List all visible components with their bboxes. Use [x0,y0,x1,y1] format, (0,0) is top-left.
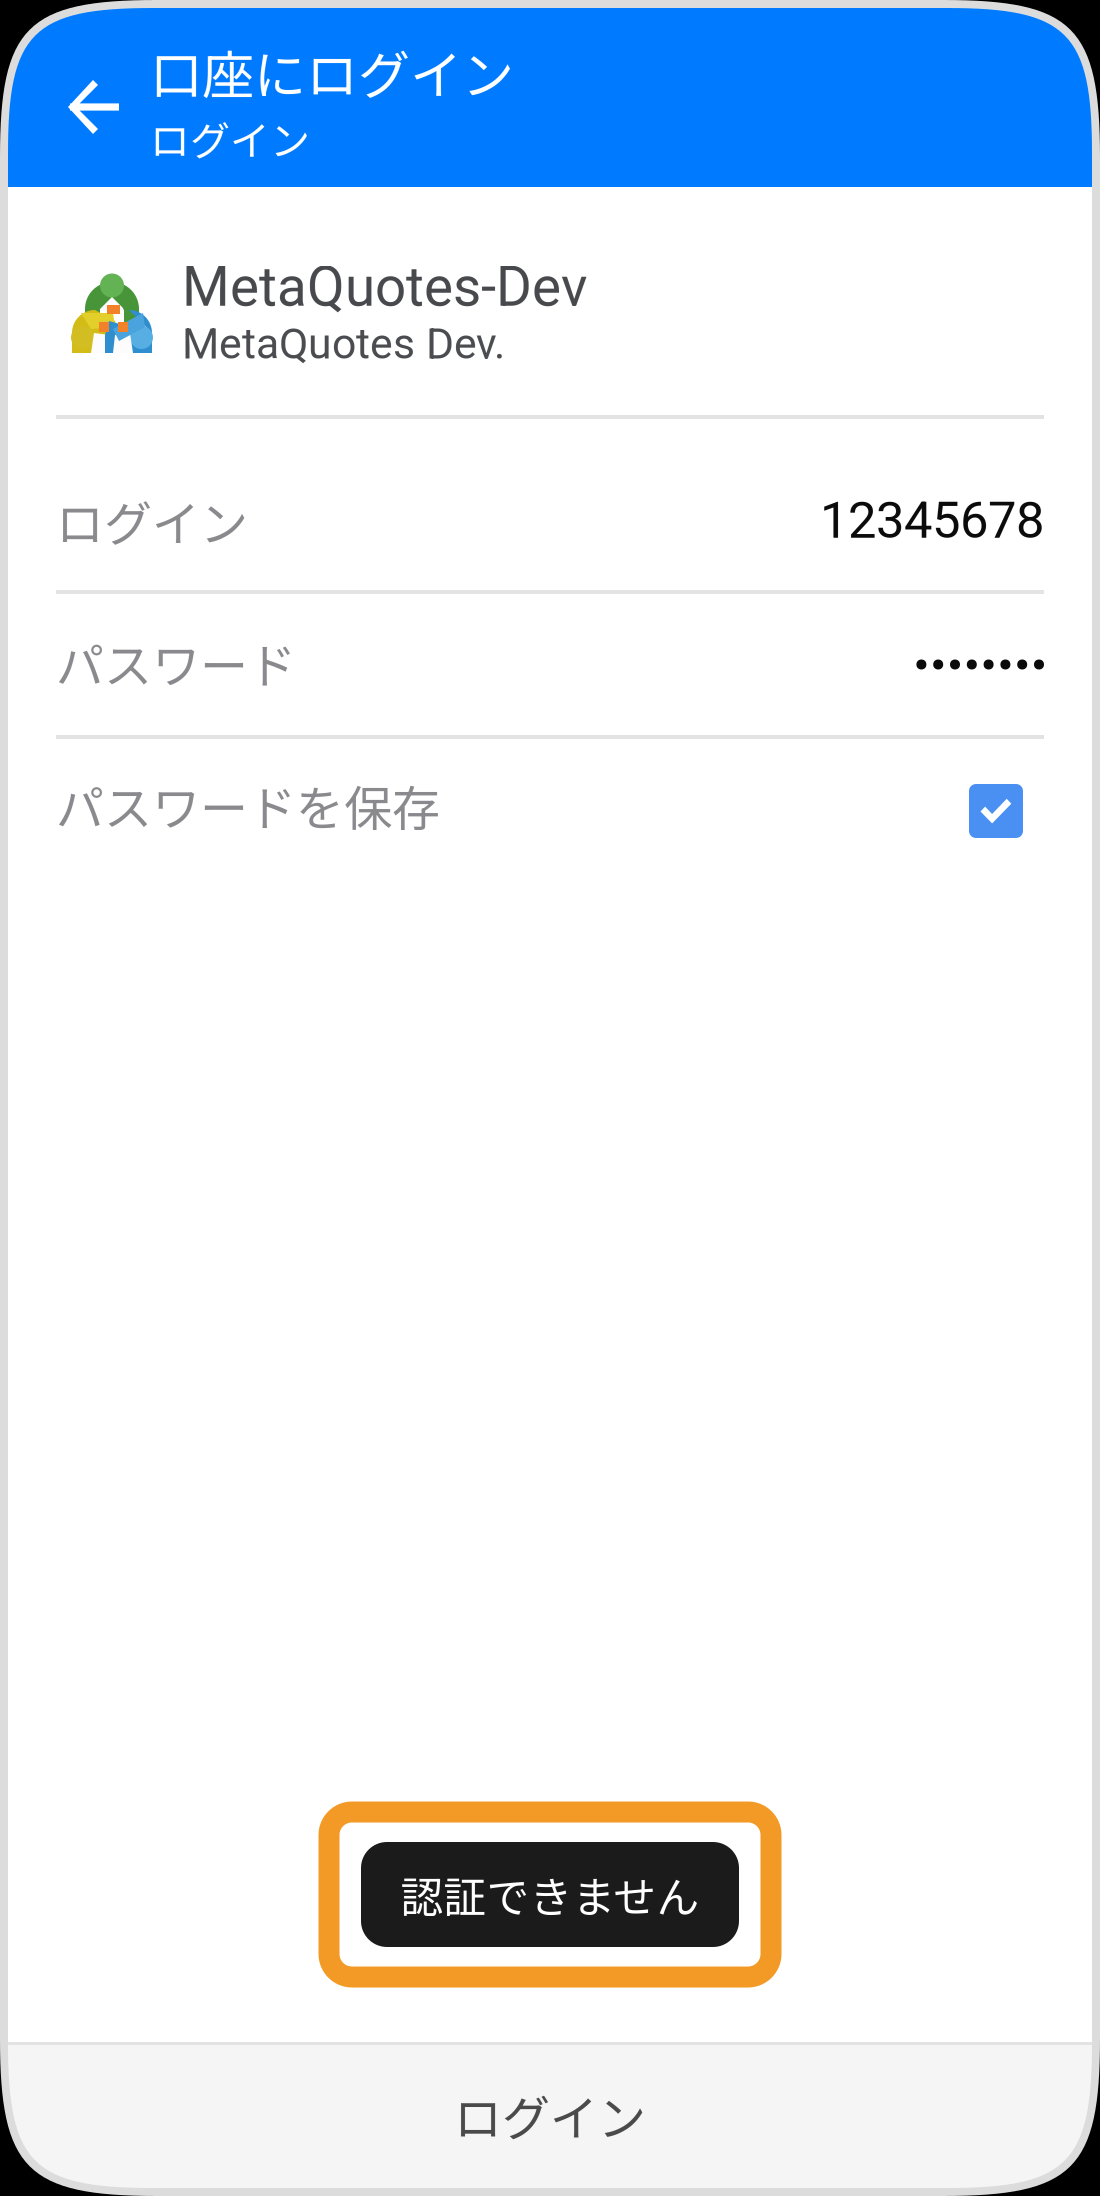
staticText: パスワードを保存 [56,770,440,840]
staticText: 認証できません [400,1864,699,1925]
staticText: MetaQuotes Dev. [182,319,505,369]
button[interactable]: ログイン [8,2042,1092,2188]
staticText: ログイン [150,109,310,167]
staticText: 口座にログイン [150,34,514,109]
staticText: MetaQuotes-Dev [182,255,587,319]
button[interactable]: パスワードを保存 [8,739,1092,883]
button[interactable]: Back [8,8,150,187]
staticText: ログイン [454,2080,646,2150]
staticText: 12345678 [820,491,1044,550]
staticText: ログイン [56,486,248,555]
staticText: パスワード [56,628,296,697]
button[interactable]: ログイン [8,419,1092,590]
button[interactable]: パスワード [8,594,1092,735]
